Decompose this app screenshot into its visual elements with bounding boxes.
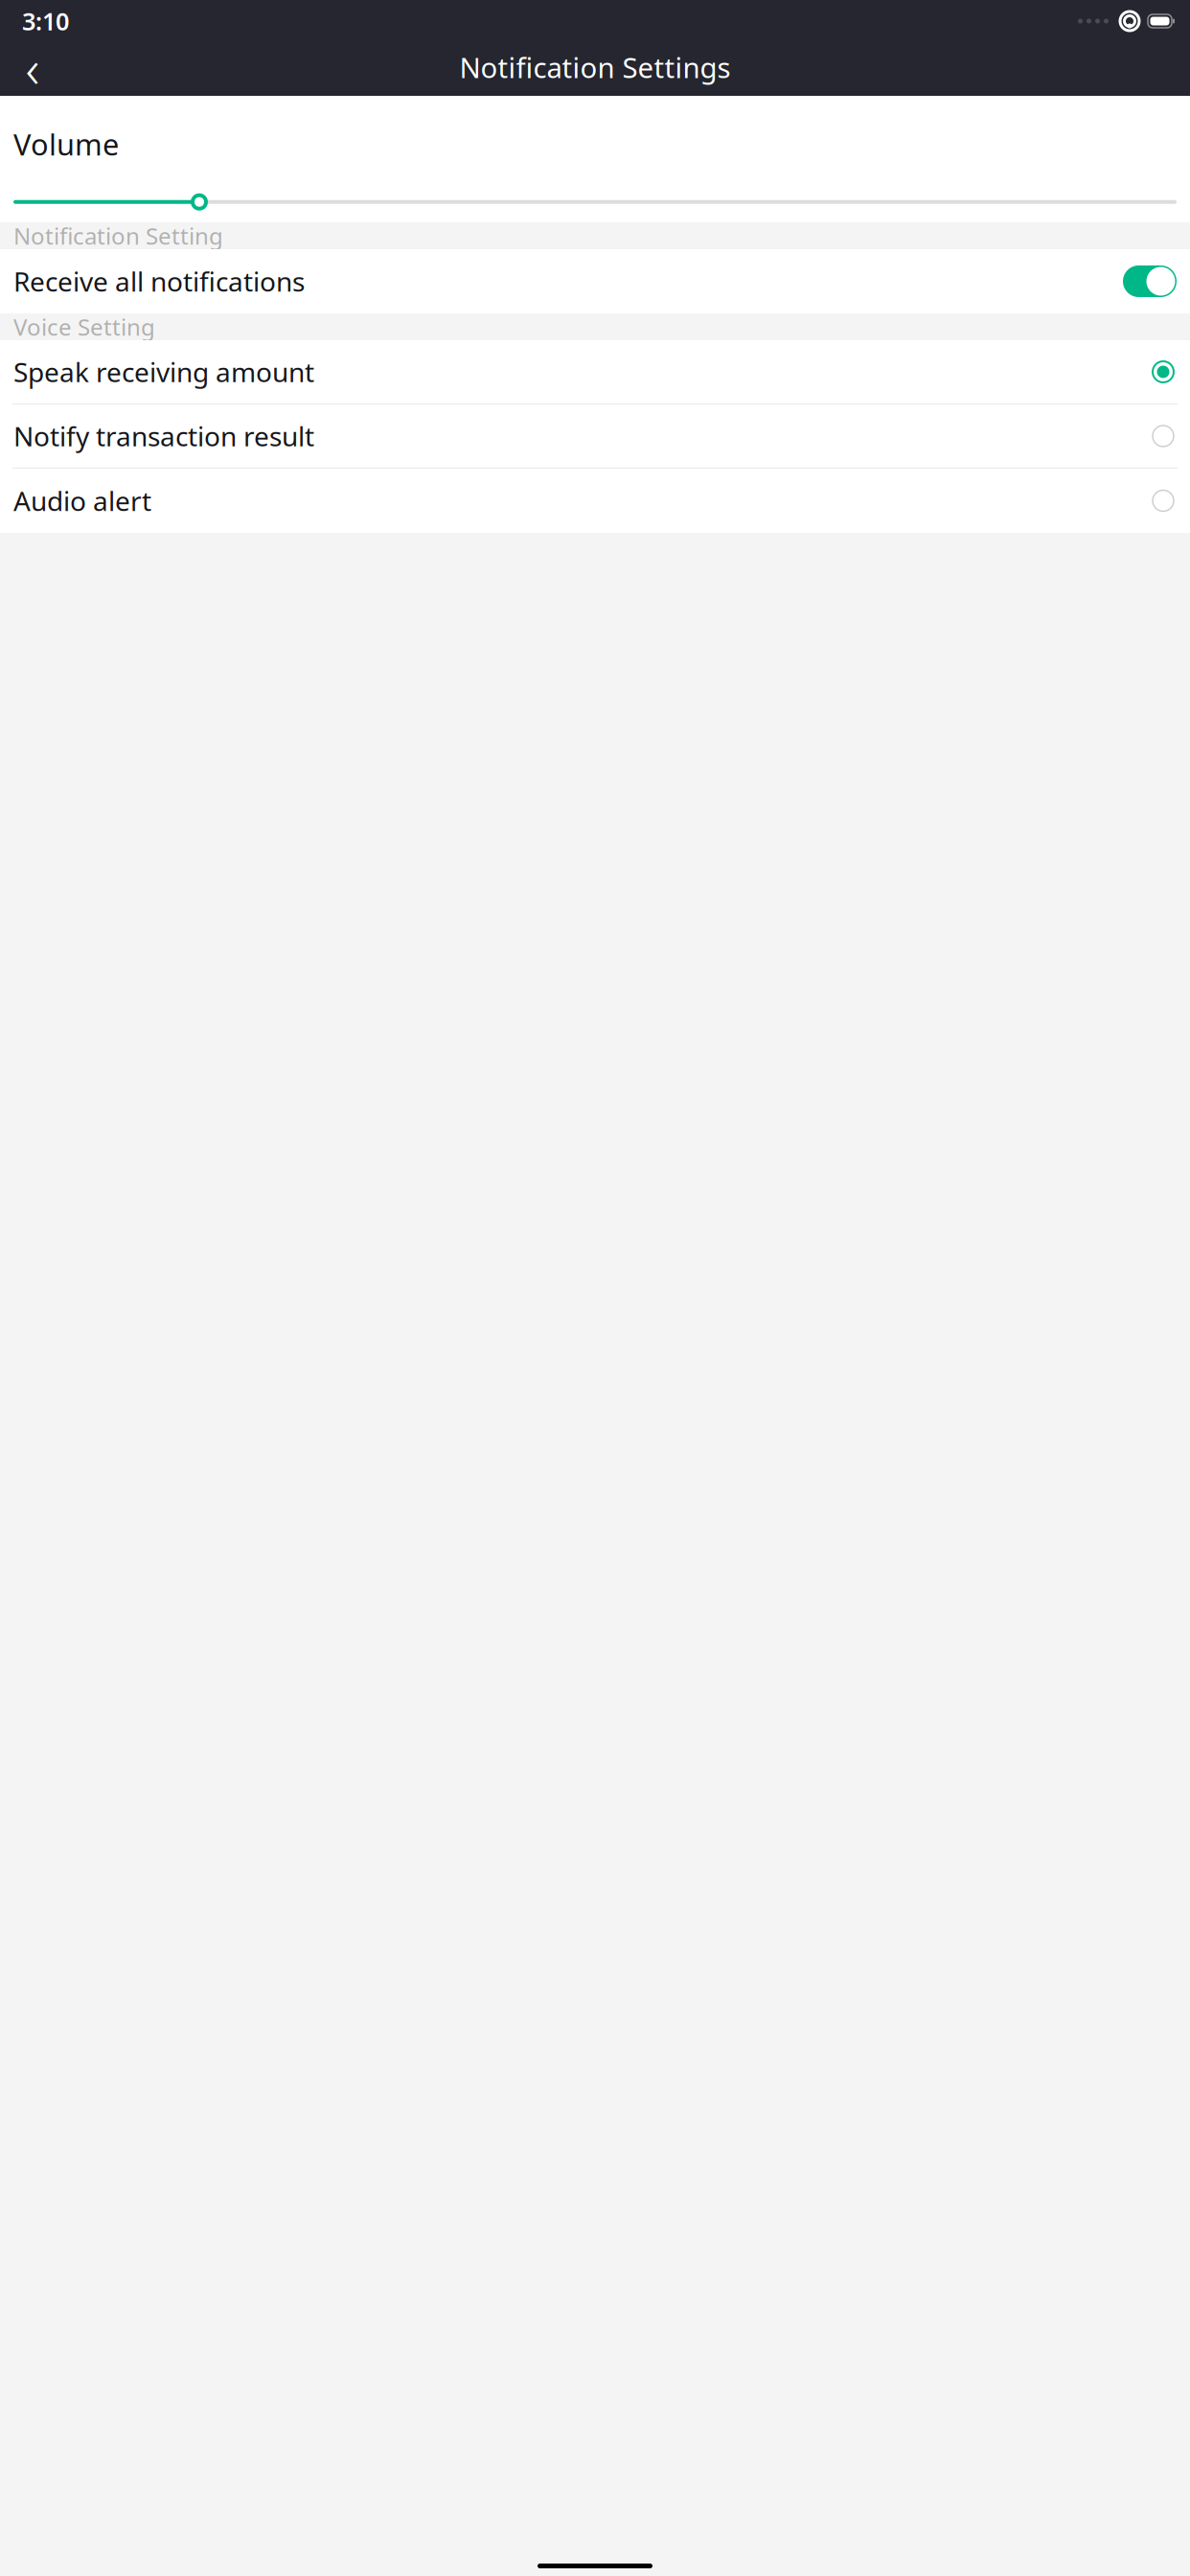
staticText: Receive all notifications xyxy=(13,263,305,299)
staticText: ‹ xyxy=(25,31,40,103)
button[interactable]: Receive all notifications xyxy=(0,249,1190,313)
button[interactable]: Back xyxy=(8,42,57,92)
staticText: Voice Setting xyxy=(13,312,155,342)
staticText: Volume xyxy=(13,125,119,164)
button[interactable]: Notify transaction result xyxy=(0,404,1190,469)
staticText: Notification Settings xyxy=(459,48,731,86)
staticText: Speak receiving amount xyxy=(13,354,314,390)
staticText: Notification Setting xyxy=(13,221,223,251)
button[interactable]: Audio alert xyxy=(0,469,1190,533)
staticText: 3:10 xyxy=(22,5,69,37)
staticText: Notify transaction result xyxy=(13,418,314,454)
button[interactable]: Speak receiving amount xyxy=(0,340,1190,404)
staticText: Audio alert xyxy=(13,483,151,519)
